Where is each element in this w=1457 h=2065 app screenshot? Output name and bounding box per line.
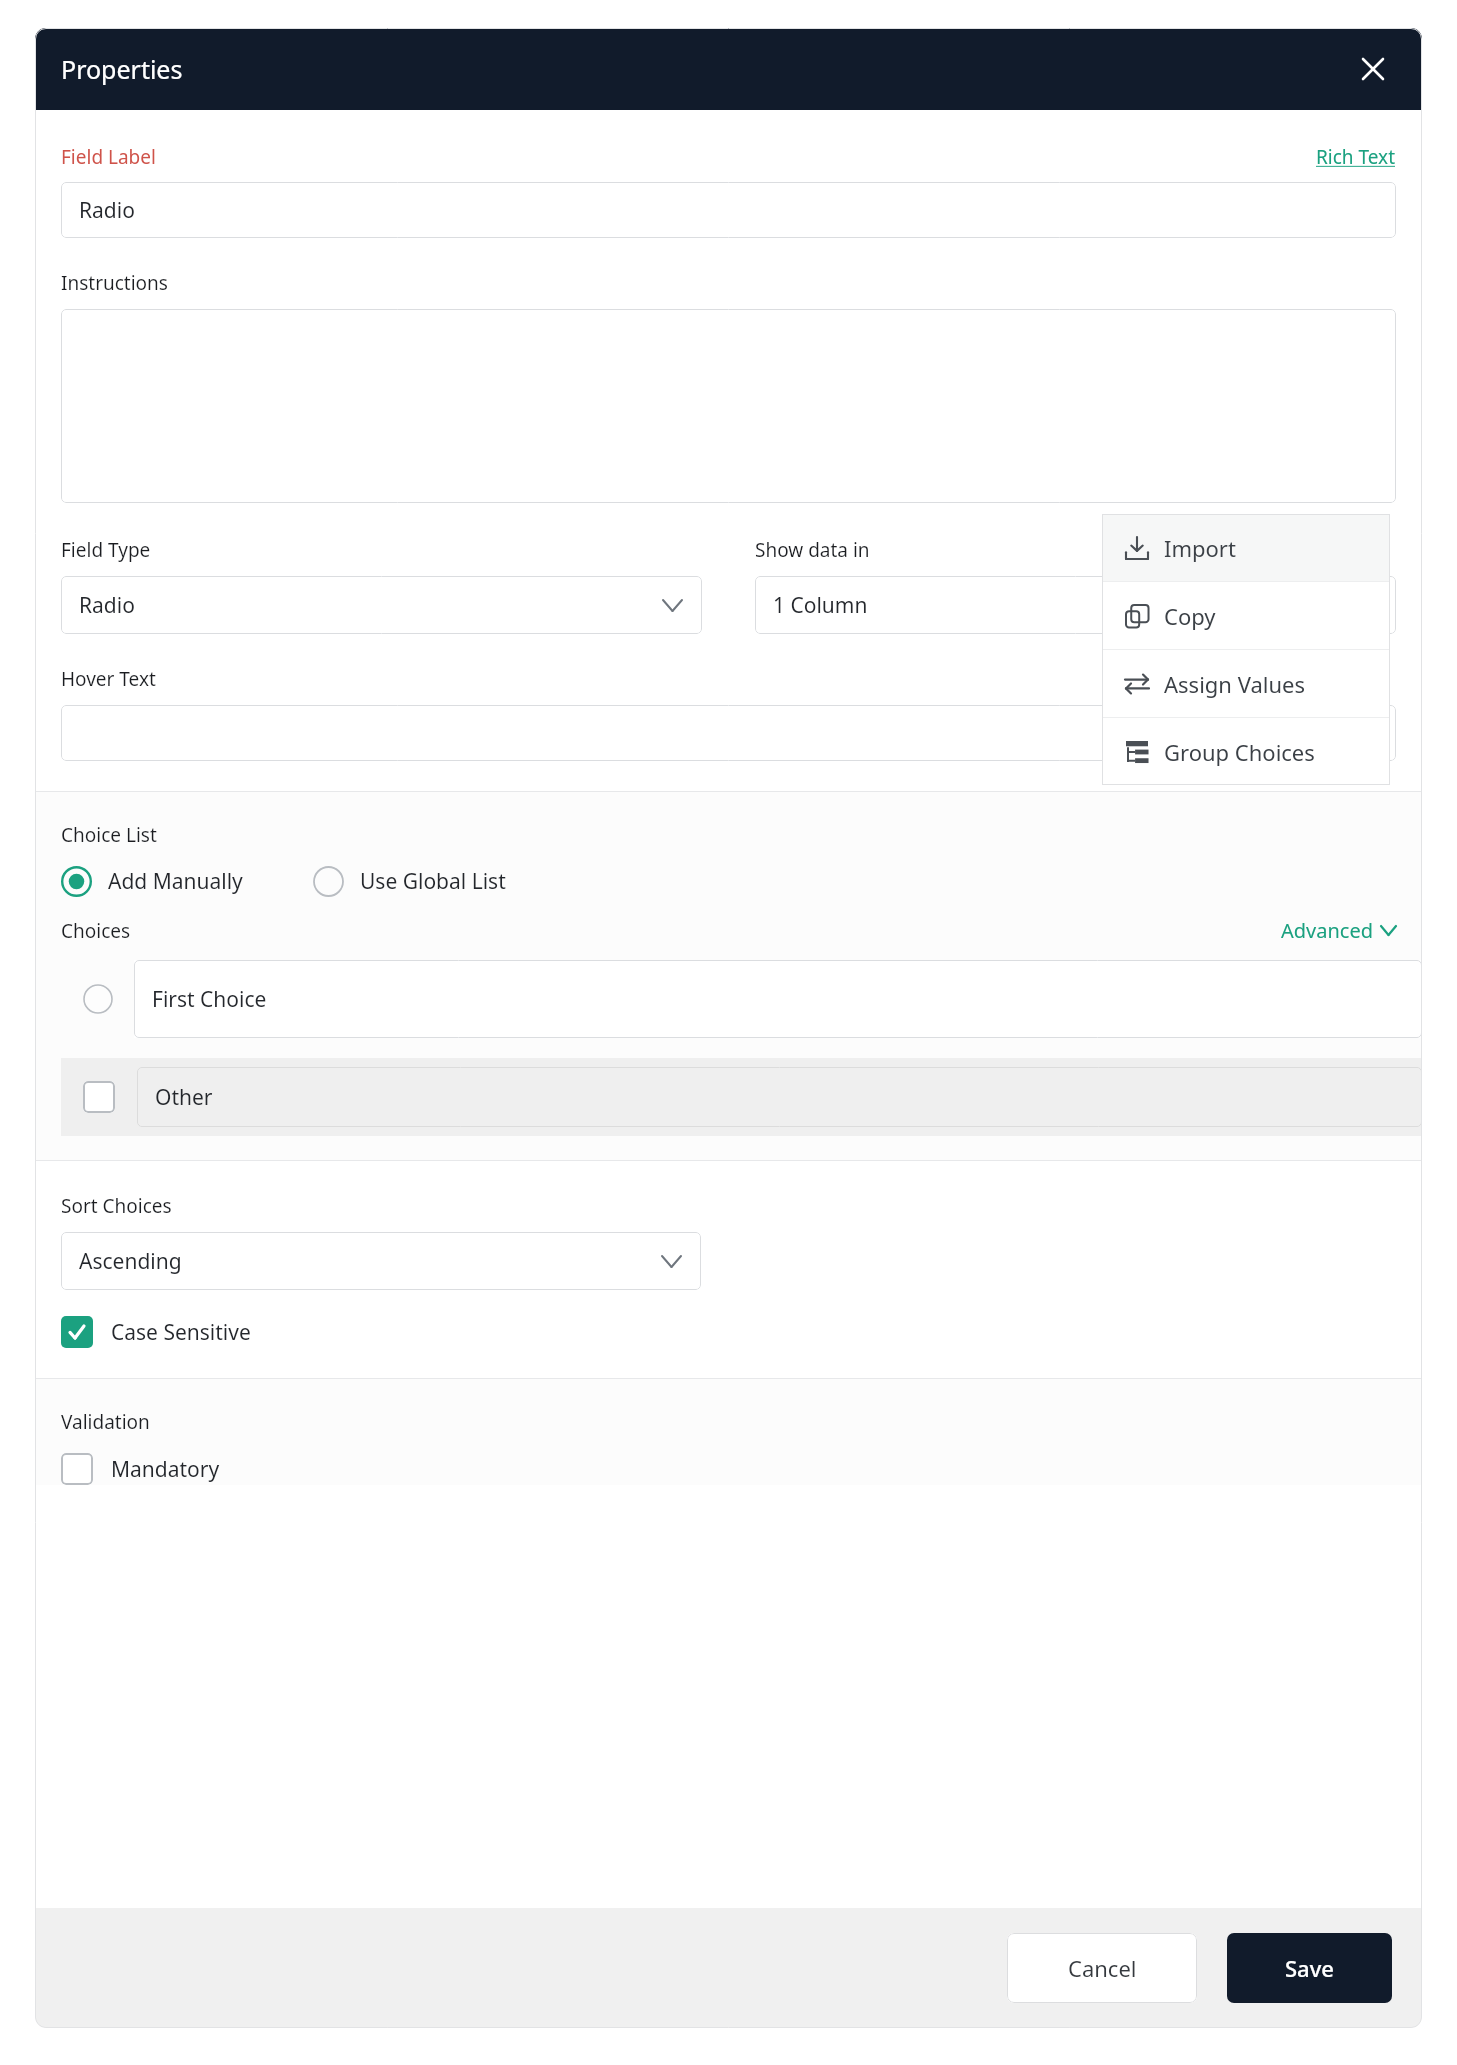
staticText: Hover Text bbox=[61, 666, 156, 692]
button[interactable]: Cancel bbox=[1007, 1933, 1197, 2003]
button[interactable] bbox=[61, 309, 1396, 503]
staticText: Choices bbox=[61, 918, 131, 944]
button[interactable]: Add Manually bbox=[61, 866, 243, 897]
button[interactable]: Rich Text bbox=[1316, 144, 1396, 170]
staticText: Field Label bbox=[61, 144, 156, 170]
staticText: Field Type bbox=[61, 537, 151, 563]
button[interactable]: Radio bbox=[61, 576, 702, 634]
staticText: Import bbox=[1164, 533, 1236, 563]
staticText: Show data in bbox=[755, 537, 870, 563]
staticText: Rich Text bbox=[1316, 144, 1396, 170]
button[interactable]: Mandatory bbox=[61, 1453, 220, 1485]
staticText: Other bbox=[155, 1083, 213, 1112]
button[interactable]: Advanced bbox=[1281, 917, 1396, 944]
button[interactable]: Case Sensitive bbox=[61, 1316, 251, 1348]
button[interactable]: Other checkbox bbox=[83, 1081, 115, 1113]
staticText: Sort Choices bbox=[61, 1193, 172, 1219]
button[interactable]: Group Choices bbox=[1102, 718, 1390, 785]
staticText: Instructions bbox=[61, 270, 168, 296]
button[interactable]: First Choice bbox=[152, 960, 1404, 1038]
staticText: Add Manually bbox=[108, 867, 243, 896]
staticText: 1 Column bbox=[773, 591, 868, 620]
button[interactable] bbox=[61, 705, 1396, 761]
staticText: Choice List bbox=[61, 822, 157, 848]
staticText: Use Global List bbox=[360, 867, 506, 896]
staticText: Validation bbox=[61, 1409, 150, 1435]
staticText: Radio bbox=[79, 196, 135, 225]
button[interactable]: Use Global List bbox=[313, 866, 506, 897]
staticText: Properties bbox=[61, 52, 183, 86]
staticText: First Choice bbox=[152, 985, 267, 1014]
button[interactable]: Assign Values bbox=[1102, 650, 1390, 717]
button[interactable]: 1 Column bbox=[755, 576, 1396, 634]
staticText: Cancel bbox=[1068, 1953, 1137, 1983]
staticText: Case Sensitive bbox=[111, 1318, 251, 1347]
staticText: Ascending bbox=[79, 1247, 182, 1276]
staticText: Group Choices bbox=[1164, 737, 1315, 767]
staticText: Save bbox=[1285, 1953, 1334, 1983]
button[interactable]: Radio bbox=[61, 182, 1396, 238]
button[interactable]: Ascending bbox=[61, 1232, 701, 1290]
staticText: Copy bbox=[1164, 601, 1216, 631]
button[interactable]: Save bbox=[1227, 1933, 1392, 2003]
staticText: Assign Values bbox=[1164, 669, 1305, 699]
button[interactable]: Copy bbox=[1102, 582, 1390, 649]
button[interactable]: Close bbox=[1350, 46, 1396, 92]
button[interactable]: Import bbox=[1102, 514, 1390, 581]
staticText: Advanced bbox=[1281, 917, 1373, 944]
staticText: Mandatory bbox=[111, 1455, 220, 1484]
staticText: Radio bbox=[79, 591, 135, 620]
